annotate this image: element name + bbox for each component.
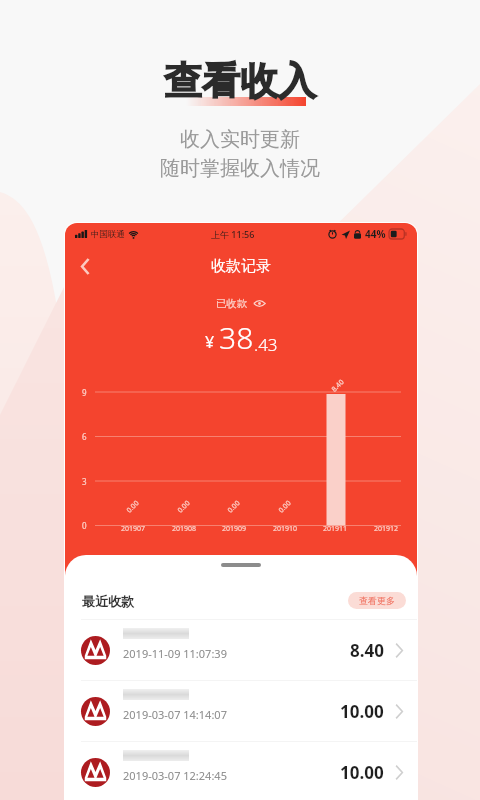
staticText: 201911 xyxy=(323,524,348,534)
staticText: 已收款 xyxy=(216,297,248,310)
staticText: 最近收款 xyxy=(82,593,134,609)
staticText: 查看收入 xyxy=(0,57,480,105)
staticText: 201907 xyxy=(121,524,146,534)
staticText: 8.40 xyxy=(350,639,384,662)
button[interactable]: 查看更多 xyxy=(348,592,406,609)
staticText: 随时掌握收入情况 xyxy=(0,156,480,181)
staticText: 收款记录 xyxy=(211,257,271,276)
staticText: 收入实时更新 xyxy=(0,127,480,152)
staticText: 201912 xyxy=(374,524,399,534)
staticText: 44% xyxy=(365,227,386,241)
staticText: 0 xyxy=(82,520,87,531)
staticText: 10.00 xyxy=(340,761,384,784)
staticText: 查看更多 xyxy=(359,595,395,606)
staticText: 201908 xyxy=(172,524,197,534)
staticText: 0.00 xyxy=(225,498,242,515)
staticText: 2019-03-07 14:14:07 xyxy=(123,707,227,722)
staticText: 201910 xyxy=(273,524,298,534)
staticText: 2019-11-09 11:07:39 xyxy=(123,646,227,661)
staticText: 中国联通 xyxy=(91,229,125,240)
staticText: 0.00 xyxy=(175,498,192,515)
staticText: 0.00 xyxy=(276,498,293,515)
staticText: 上午 11:56 xyxy=(211,228,255,240)
staticText: 0.00 xyxy=(124,498,141,515)
staticText: 8.40 xyxy=(329,377,346,394)
button[interactable]: 2019-03-07 12:24:45 xyxy=(65,742,417,800)
staticText: 6 xyxy=(82,431,87,442)
staticText: 9 xyxy=(82,387,87,398)
staticText: 201909 xyxy=(222,524,247,534)
button[interactable]: 2019-03-07 14:14:07 xyxy=(65,681,417,741)
staticText: 38 xyxy=(219,317,254,358)
button[interactable]: 2019-11-09 11:07:39 xyxy=(65,620,417,680)
staticText: 3 xyxy=(82,476,87,487)
staticText: 2019-03-07 12:24:45 xyxy=(123,768,227,783)
staticText: 10.00 xyxy=(340,700,384,723)
staticText: ¥ xyxy=(205,331,215,353)
staticText: .43 xyxy=(254,333,278,356)
button[interactable]: Back xyxy=(70,251,100,281)
